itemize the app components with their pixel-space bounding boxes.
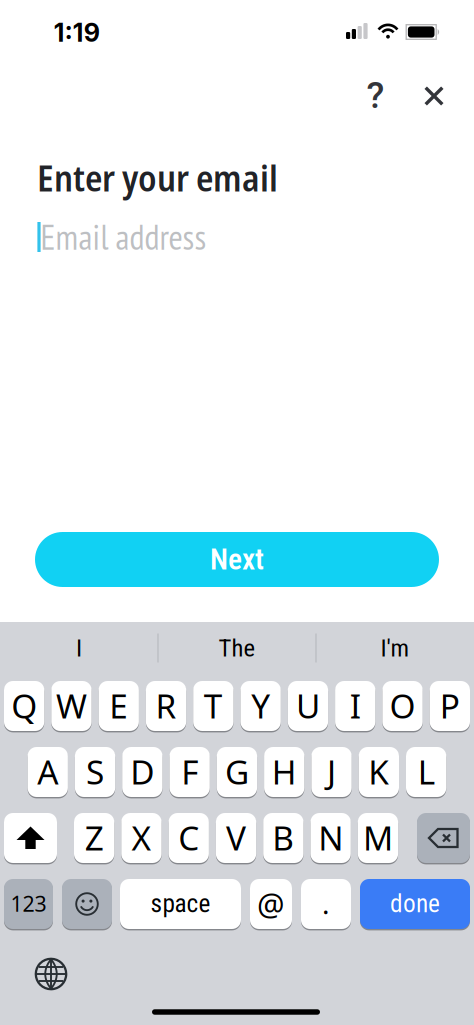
- staticText: U: [296, 683, 320, 728]
- staticText: E: [109, 683, 128, 728]
- button[interactable]: J: [311, 746, 352, 798]
- staticText: W: [56, 683, 87, 728]
- staticText: R: [155, 683, 176, 728]
- button[interactable]: T: [193, 680, 233, 732]
- staticText: done: [390, 889, 440, 918]
- button[interactable]: space: [120, 878, 241, 930]
- button[interactable]: X: [121, 812, 162, 864]
- staticText: F: [181, 749, 198, 794]
- button[interactable]: I'm: [320, 626, 470, 670]
- button[interactable]: M: [358, 812, 398, 864]
- staticText: Z: [85, 815, 104, 860]
- staticText: A: [37, 749, 58, 794]
- staticText: 123: [10, 889, 46, 918]
- staticText: L: [418, 749, 435, 794]
- staticText: C: [178, 815, 199, 860]
- button[interactable]: [62, 878, 112, 930]
- staticText: J: [327, 749, 336, 794]
- button[interactable]: F: [169, 746, 210, 798]
- staticText: Next: [210, 542, 264, 577]
- staticText: I'm: [380, 633, 409, 662]
- button[interactable]: Q: [4, 680, 44, 732]
- button[interactable]: Y: [240, 680, 281, 732]
- staticText: G: [225, 749, 249, 794]
- button[interactable]: 123: [4, 878, 53, 930]
- button[interactable]: D: [122, 746, 162, 798]
- button[interactable]: A: [28, 746, 68, 798]
- button[interactable]: .: [301, 878, 351, 930]
- staticText: The: [218, 633, 255, 662]
- staticText: N: [318, 815, 343, 860]
- button[interactable]: ?: [353, 73, 397, 117]
- button[interactable]: [417, 812, 470, 864]
- button[interactable]: K: [359, 746, 399, 798]
- staticText: @: [257, 883, 285, 924]
- staticText: P: [440, 683, 460, 728]
- button[interactable]: V: [216, 812, 256, 864]
- button[interactable]: S: [75, 746, 115, 798]
- button[interactable]: Next: [35, 532, 439, 587]
- button[interactable]: P: [430, 680, 470, 732]
- button[interactable]: W: [51, 680, 92, 732]
- staticText: B: [272, 815, 294, 860]
- staticText: I: [350, 683, 361, 728]
- staticText: I: [76, 633, 82, 662]
- staticText: .: [322, 885, 330, 922]
- staticText: S: [86, 749, 104, 794]
- button[interactable]: U: [288, 680, 328, 732]
- button[interactable]: C: [169, 812, 209, 864]
- staticText: T: [204, 683, 223, 728]
- button[interactable]: G: [217, 746, 257, 798]
- button[interactable]: L: [406, 746, 446, 798]
- button[interactable]: E: [99, 680, 139, 732]
- staticText: O: [389, 683, 415, 728]
- staticText: Enter your email: [37, 153, 278, 202]
- button[interactable]: [412, 74, 456, 118]
- staticText: 1:19: [54, 17, 100, 48]
- staticText: K: [368, 749, 389, 794]
- button[interactable]: H: [264, 746, 304, 798]
- button[interactable]: I: [335, 680, 375, 732]
- button[interactable]: B: [263, 812, 303, 864]
- button[interactable]: N: [310, 812, 351, 864]
- button[interactable]: done: [360, 878, 470, 930]
- staticText: X: [131, 815, 151, 860]
- button[interactable]: I: [4, 626, 154, 670]
- button[interactable]: @: [250, 878, 292, 930]
- staticText: ?: [366, 74, 384, 117]
- staticText: V: [226, 815, 246, 860]
- staticText: space: [150, 889, 210, 918]
- staticText: H: [272, 749, 297, 794]
- staticText: D: [130, 749, 154, 794]
- button[interactable]: Z: [74, 812, 114, 864]
- button[interactable]: R: [146, 680, 186, 732]
- button[interactable]: Email address: [36, 218, 438, 256]
- button[interactable]: O: [382, 680, 423, 732]
- button[interactable]: [4, 812, 57, 864]
- staticText: M: [363, 815, 393, 860]
- button[interactable]: The: [162, 626, 312, 670]
- staticText: Y: [251, 683, 270, 728]
- staticText: Email address: [40, 215, 206, 259]
- button[interactable]: [29, 952, 73, 996]
- staticText: Q: [11, 683, 37, 728]
